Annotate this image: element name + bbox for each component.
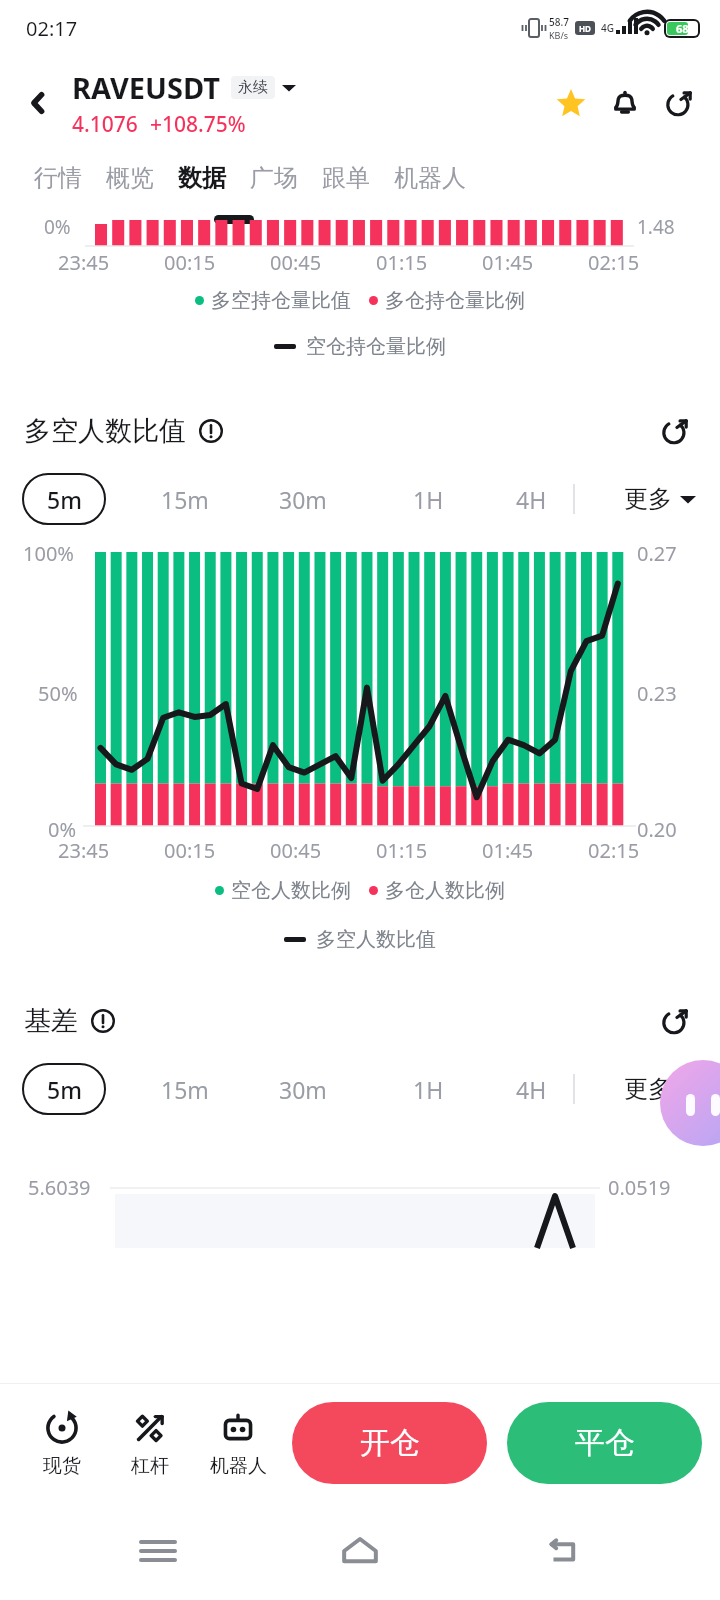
staticText: 5m [47,484,82,515]
button[interactable]: Expand chart [650,996,700,1046]
staticText: 多空人数比值 [24,414,186,448]
button[interactable]: 平仓 [507,1402,702,1484]
button[interactable]: 永续 [238,78,268,97]
button[interactable]: 机器人 [382,150,478,206]
staticText: 平仓 [575,1424,635,1462]
staticText: 0% [48,816,77,843]
button[interactable]: 广场 [238,150,310,206]
button[interactable]: 数据 [166,150,238,206]
staticText: 开仓 [360,1424,420,1462]
staticText: 0% [44,214,71,240]
staticText: 广场 [250,163,298,193]
staticText: 4H [516,1074,547,1105]
staticText: 多空持仓量比值 [211,288,351,313]
staticText: 空仓持仓量比例 [306,334,446,359]
staticText: 02:15 [588,837,640,864]
button[interactable]: Home [315,1506,405,1596]
staticText: 机器人 [394,163,466,193]
staticText: 多空人数比值 [316,927,436,952]
staticText: 1H [413,484,444,515]
button[interactable]: 30m [270,473,336,525]
staticText: 4G [601,21,614,35]
button[interactable]: 开仓 [292,1402,487,1484]
staticText: 多仓人数比例 [385,878,505,903]
staticText: 1.48 [637,214,675,240]
staticText: 4H [516,484,547,515]
button[interactable]: Favorite [544,76,598,130]
staticText: 00:45 [270,249,322,276]
staticText: 0.0519 [608,1174,671,1201]
staticText: 01:45 [482,837,534,864]
staticText: 现货 [43,1454,81,1478]
button[interactable]: 15m [152,473,218,525]
button[interactable]: 4H [498,1063,564,1115]
staticText: 杠杆 [131,1454,169,1478]
staticText: 机器人 [210,1454,267,1478]
staticText: 00:15 [164,249,216,276]
button[interactable]: 机器人 [194,1403,282,1484]
staticText: 01:15 [376,249,428,276]
button[interactable]: 更多 [618,1066,702,1112]
button[interactable]: 30m [270,1063,336,1115]
staticText: 23:45 [58,249,110,276]
staticText: 30m [279,484,327,515]
staticText: 30m [279,1074,327,1105]
button[interactable]: 5m [22,473,106,525]
button[interactable]: 1H [395,1063,461,1115]
staticText: 01:45 [482,249,534,276]
staticText: 15m [161,1074,209,1105]
staticText: 5.6039 [28,1174,91,1201]
button[interactable]: 更多 [618,476,702,522]
staticText: 15m [161,484,209,515]
button[interactable]: Info [88,1006,118,1036]
staticText: 58.7 [549,15,569,29]
staticText: 空仓人数比例 [231,878,351,903]
staticText: 基差 [24,1004,78,1038]
button[interactable]: Recents [113,1506,203,1596]
staticText: 永续 [238,78,268,97]
staticText: 多仓持仓量比例 [385,288,525,313]
staticText: 100% [23,540,74,567]
staticText: 数据 [178,163,226,193]
staticText: 68 [676,21,689,36]
button[interactable]: 跟单 [310,150,382,206]
button[interactable]: 概览 [94,150,166,206]
staticText: 4.1076 [72,110,138,139]
staticText: 1H [413,1074,444,1105]
button[interactable]: 行情 [22,150,94,206]
button[interactable]: Alerts [598,76,652,130]
staticText: 01:15 [376,837,428,864]
staticText: 概览 [106,163,154,193]
staticText: 0.27 [637,540,677,567]
staticText: +108.75% [150,110,246,139]
button[interactable]: Back [14,79,62,127]
button[interactable]: 现货 [18,1403,106,1484]
button[interactable]: 杠杆 [106,1403,194,1484]
staticText: 跟单 [322,163,370,193]
button[interactable]: 4H [498,473,564,525]
staticText: 行情 [34,163,82,193]
button[interactable]: AI assistant [660,1060,720,1146]
button[interactable]: Share [652,76,706,130]
staticText: 50% [38,680,78,707]
staticText: 23:45 [58,837,110,864]
staticText: 0.20 [637,816,677,843]
staticText: 00:45 [270,837,322,864]
staticText: 02:17 [26,15,78,42]
staticText: HD [579,23,591,34]
button[interactable]: 15m [152,1063,218,1115]
staticText: 02:15 [588,249,640,276]
staticText: 更多 [624,484,672,514]
button[interactable]: 5m [22,1063,106,1115]
staticText: RAVEUSDT [72,68,221,107]
button[interactable]: Info [196,416,226,446]
staticText: KB/s [549,29,569,41]
button[interactable]: Expand chart [650,406,700,456]
staticText: 00:15 [164,837,216,864]
button[interactable]: 1H [395,473,461,525]
staticText: 0.23 [637,680,677,707]
staticText: 5m [47,1074,82,1105]
staticText: 更多 [624,1074,672,1104]
button[interactable]: Back [518,1506,608,1596]
